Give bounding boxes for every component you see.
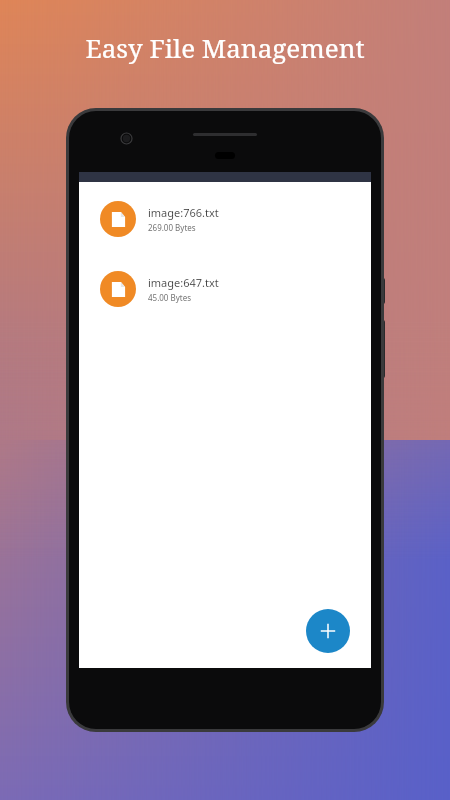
staticText: image:647.txt [148, 275, 219, 290]
staticText: image:766.txt [148, 205, 219, 220]
staticText: 269.00 Bytes [148, 222, 196, 233]
button[interactable]: Add file [306, 609, 350, 653]
staticText: 45.00 Bytes [148, 292, 192, 303]
button[interactable]: image:647.txt [79, 269, 371, 309]
button[interactable]: image:766.txt [79, 199, 371, 239]
staticText: Easy File Management [85, 30, 365, 65]
